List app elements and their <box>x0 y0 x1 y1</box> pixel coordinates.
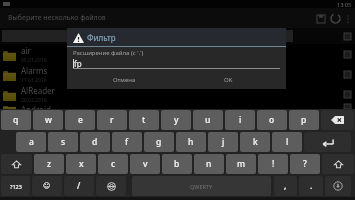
button[interactable] <box>304 132 351 152</box>
button[interactable]: Refresh <box>328 11 343 26</box>
button[interactable]: y <box>161 110 191 130</box>
button[interactable]: Android <box>0 104 355 109</box>
button[interactable] <box>96 176 126 196</box>
button[interactable]: v <box>130 154 160 174</box>
button[interactable]: More options <box>343 14 352 23</box>
staticText: Alarms <box>21 65 48 76</box>
button[interactable]: Отмена <box>73 73 176 86</box>
staticText: air <box>21 45 31 56</box>
button[interactable]: / <box>64 176 94 196</box>
button[interactable]: air <box>0 44 355 64</box>
staticText: w <box>45 114 52 126</box>
button[interactable]: i <box>225 110 255 130</box>
button[interactable]: z <box>34 154 64 174</box>
staticText: q <box>13 114 19 126</box>
staticText: n <box>206 158 212 170</box>
staticText: u <box>205 114 211 126</box>
staticText: . <box>310 180 313 192</box>
button[interactable]: d <box>80 132 110 152</box>
button[interactable] <box>322 154 354 174</box>
staticText: o <box>269 114 275 126</box>
button[interactable]: c <box>98 154 128 174</box>
staticText: 13:05 <box>337 1 352 8</box>
staticText: s <box>61 136 66 148</box>
button[interactable]: OK <box>176 73 280 86</box>
staticText: ! <box>272 158 275 170</box>
button[interactable]: w <box>33 110 63 130</box>
staticText: p <box>301 114 307 126</box>
button[interactable] <box>325 176 351 196</box>
staticText: Android <box>21 104 51 109</box>
staticText: Выберите несколько файлов <box>8 13 106 23</box>
button[interactable]: g <box>144 132 174 152</box>
button[interactable]: ? <box>290 154 320 174</box>
button[interactable]: AlReader <box>0 84 355 104</box>
staticText: r <box>110 114 114 126</box>
button[interactable]: ?123 <box>1 176 30 196</box>
button[interactable]: q <box>1 110 31 130</box>
staticText: e <box>78 114 83 126</box>
staticText: b <box>174 158 180 170</box>
button[interactable]: ☺ <box>32 176 62 196</box>
staticText: Отмена <box>113 76 136 84</box>
button[interactable]: j <box>208 132 238 152</box>
button[interactable]: Alarms <box>0 64 355 84</box>
staticText: , <box>284 180 287 192</box>
staticText: AlReader <box>21 85 55 96</box>
staticText: a <box>29 136 34 148</box>
staticText: / <box>77 180 81 192</box>
staticText: 05.01.2016 <box>21 57 47 64</box>
staticText: 11.01.2016 <box>21 77 47 84</box>
staticText: ? <box>303 158 307 170</box>
button[interactable]: r <box>97 110 127 130</box>
button[interactable]: o <box>257 110 287 130</box>
staticText: d <box>92 136 98 148</box>
staticText: g <box>156 136 162 148</box>
button[interactable]: u <box>193 110 223 130</box>
button[interactable]: Save <box>313 11 328 26</box>
button[interactable]: s <box>48 132 78 152</box>
staticText: OK <box>224 76 233 84</box>
staticText: v <box>143 158 148 170</box>
staticText: Фильтр <box>87 32 116 43</box>
button[interactable]: ! <box>258 154 288 174</box>
staticText: k <box>253 136 258 148</box>
staticText: fp <box>74 58 82 69</box>
button[interactable]: a <box>16 132 46 152</box>
button[interactable]: t <box>129 110 159 130</box>
staticText: f <box>125 136 129 148</box>
staticText: t <box>142 114 146 126</box>
button[interactable]: m <box>226 154 256 174</box>
staticText: m <box>237 158 246 170</box>
staticText: h <box>188 136 194 148</box>
staticText: y <box>174 114 179 126</box>
staticText: z <box>47 158 52 170</box>
staticText: QWERTY <box>190 183 213 190</box>
button[interactable]: k <box>240 132 270 152</box>
staticText: ?123 <box>10 183 22 190</box>
button[interactable]: f <box>112 132 142 152</box>
staticText: x <box>79 158 84 170</box>
button[interactable]: b <box>162 154 192 174</box>
button[interactable]: p <box>289 110 319 130</box>
button[interactable]: , <box>274 176 297 196</box>
staticText: l <box>286 136 289 148</box>
button[interactable]: l <box>272 132 302 152</box>
button[interactable]: x <box>66 154 96 174</box>
button[interactable]: Path <box>2 30 293 42</box>
staticText: ☺ <box>43 182 51 190</box>
staticText: Расширение файла (с '.') <box>73 49 144 57</box>
button[interactable]: h <box>176 132 206 152</box>
button[interactable] <box>1 154 32 174</box>
staticText: j <box>222 136 225 148</box>
button[interactable]: QWERTY <box>132 176 271 196</box>
button[interactable] <box>321 110 354 130</box>
staticText: i <box>239 114 242 126</box>
staticText: 20.02.2016 <box>21 97 47 104</box>
button[interactable]: e <box>65 110 95 130</box>
button[interactable]: n <box>194 154 224 174</box>
staticText: c <box>111 158 116 170</box>
button[interactable]: . <box>299 176 323 196</box>
